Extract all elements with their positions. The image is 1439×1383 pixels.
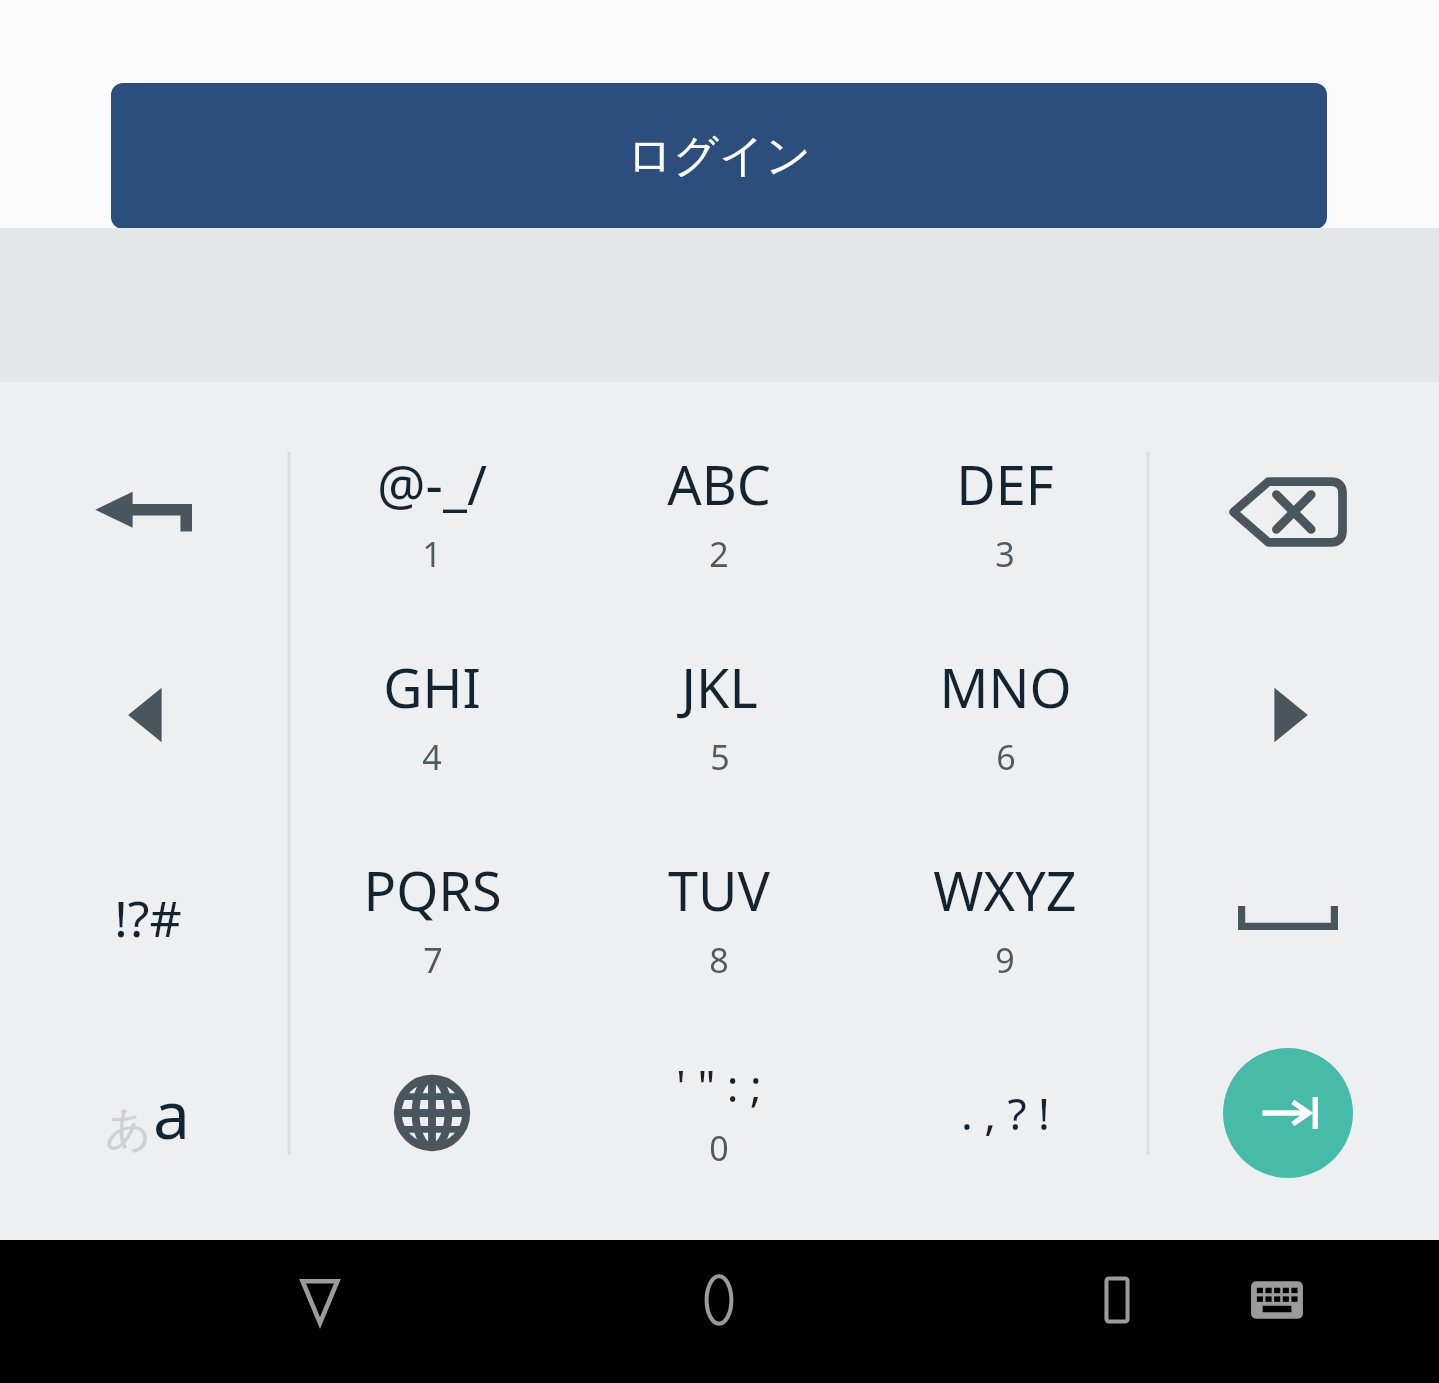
button[interactable]: TUV — [584, 820, 854, 1016]
button[interactable]: ログイン — [111, 83, 1327, 229]
button[interactable]: Next field — [1153, 1015, 1423, 1211]
staticText: JKL — [681, 650, 758, 724]
button[interactable]: Switch keyboard — [1197, 1240, 1357, 1360]
button[interactable]: ' " : ; — [584, 1015, 854, 1211]
button[interactable]: Hide keyboard — [230, 1240, 410, 1360]
staticText: 6 — [996, 734, 1016, 780]
button[interactable]: GHI — [297, 617, 567, 813]
staticText: @-_/ — [377, 447, 487, 521]
staticText: ログイン — [627, 128, 812, 185]
staticText: 0 — [709, 1125, 729, 1171]
staticText: !?# — [114, 884, 182, 952]
staticText: WXYZ — [933, 853, 1077, 927]
button[interactable]: !?# — [13, 820, 283, 1016]
staticText: 2 — [709, 531, 729, 577]
staticText: 7 — [423, 937, 443, 983]
staticText: TUV — [668, 853, 770, 927]
button[interactable]: Recent apps — [1027, 1240, 1207, 1360]
staticText: あ — [105, 1100, 153, 1158]
button[interactable]: Switch input mode — [13, 1015, 283, 1211]
button[interactable]: @-_/ — [297, 414, 567, 610]
staticText: PQRS — [363, 853, 502, 927]
staticText: 3 — [995, 531, 1015, 577]
button[interactable]: Move cursor left — [13, 617, 283, 813]
staticText: . , ? ! — [961, 1083, 1050, 1143]
staticText: MNO — [939, 650, 1072, 724]
staticText: 9 — [995, 937, 1015, 983]
staticText: ' " : ; — [676, 1055, 762, 1115]
button[interactable]: Undo — [13, 414, 283, 610]
staticText: ABC — [667, 447, 771, 521]
button[interactable]: Backspace — [1153, 414, 1423, 610]
staticText: 1 — [422, 531, 442, 577]
button[interactable]: PQRS — [297, 820, 567, 1016]
button[interactable]: MNO — [870, 617, 1140, 813]
staticText: DEF — [956, 447, 1054, 521]
staticText: GHI — [383, 650, 481, 724]
button[interactable]: . , ? ! — [870, 1015, 1140, 1211]
button[interactable]: JKL — [584, 617, 854, 813]
button[interactable]: Home — [629, 1240, 809, 1360]
button[interactable]: DEF — [870, 414, 1140, 610]
staticText: 5 — [710, 734, 730, 780]
button[interactable]: Change keyboard language — [297, 1015, 567, 1211]
staticText: a — [153, 1068, 191, 1158]
button[interactable]: ABC — [584, 414, 854, 610]
staticText: 8 — [709, 937, 729, 983]
button[interactable]: Space — [1153, 820, 1423, 1016]
button[interactable]: WXYZ — [870, 820, 1140, 1016]
button[interactable]: Move cursor right — [1153, 617, 1423, 813]
staticText: 4 — [422, 734, 442, 780]
